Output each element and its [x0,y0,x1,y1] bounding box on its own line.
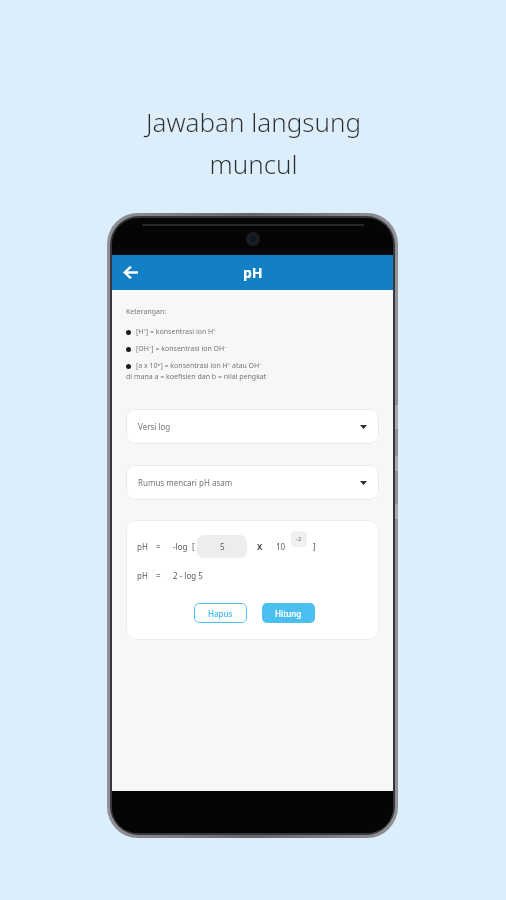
staticText: Hapus [208,608,233,619]
staticText: X [257,541,263,552]
staticText: Keterangan: [126,307,167,317]
staticText: pH [243,263,263,282]
button[interactable]: Hapus [194,603,247,623]
button[interactable]: -2 [291,531,307,547]
staticText: Hitung [275,608,302,619]
staticText: 2 - log 5 [173,570,203,581]
staticText: Rumus mencari pH asam [138,477,233,488]
staticText: = [156,570,161,581]
button[interactable]: Hitung [262,603,315,623]
staticText: ] [313,541,316,552]
button[interactable]: 5 [197,535,247,558]
staticText: [OH⁻] = konsentrasi ion OH⁻ [136,344,227,354]
staticText: Jawaban langsung [146,104,361,139]
button[interactable]: Versi log [126,409,379,444]
staticText: -2 [296,535,302,543]
staticText: pH [137,541,148,552]
staticText: di mana a = koefisien dan b = nilai peng… [126,372,267,382]
staticText: [a x 10ᵇ] = konsentrasi ion H⁺ atau OH⁻ [136,361,262,371]
staticText: [H⁺] = konsentrasi ion H⁺ [136,327,216,337]
button[interactable]: Rumus mencari pH asam [126,465,379,500]
staticText: Versi log [138,421,171,432]
button[interactable]: Back [112,255,148,290]
staticText: -log [173,541,188,552]
staticText: 5 [220,541,225,552]
staticText: pH [137,570,148,581]
staticText: = [156,541,161,552]
staticText: [ [192,541,195,552]
staticText: 10 [276,541,286,552]
staticText: muncul [209,146,298,181]
